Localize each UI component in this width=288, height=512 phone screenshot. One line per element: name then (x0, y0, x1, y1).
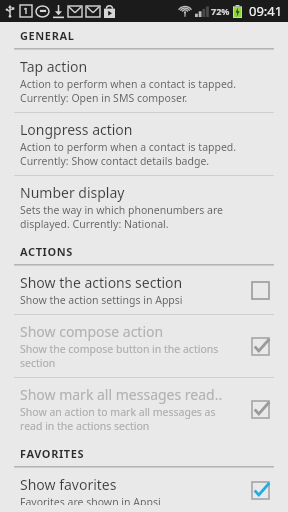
staticText: displayed. Currently: National. (20, 217, 169, 231)
staticText: Action to perform when a contact is tapp… (20, 140, 237, 154)
staticText: section (20, 356, 56, 370)
staticText: 72% (211, 5, 230, 17)
staticText: Currently: Show contact details badge. (20, 154, 210, 168)
staticText: Favorites are shown in Appsi (20, 495, 161, 505)
button[interactable]: Number display (0, 176, 288, 238)
staticText: GENERAL (20, 28, 75, 43)
staticText: Sets the way in which phonenumbers are (20, 203, 223, 217)
button[interactable]: Toggle setting (244, 475, 276, 505)
staticText: Currently: Open in SMS composer. (20, 91, 188, 105)
button[interactable]: Tap action (0, 50, 288, 112)
staticText: ACTIONS (20, 244, 73, 259)
staticText: Show mark all messages read.. (20, 385, 223, 404)
button[interactable]: Show favorites (0, 468, 288, 512)
button[interactable]: Show mark all messages read.. (0, 378, 288, 440)
button[interactable]: Show compose action (0, 315, 288, 377)
button[interactable]: Longpress action (0, 113, 288, 175)
button[interactable]: Toggle setting (244, 330, 276, 362)
staticText: Show the actions section (20, 273, 183, 292)
button[interactable]: Toggle setting (244, 393, 276, 425)
staticText: FAVORITES (20, 446, 85, 461)
staticText: Tap action (20, 57, 88, 76)
staticText: read in the actions section (20, 419, 150, 433)
staticText: 09:41 (249, 2, 283, 20)
button[interactable]: Show the actions section (0, 266, 288, 314)
staticText: Show the action settings in Appsi (20, 293, 183, 307)
staticText: Action to perform when a contact is tapp… (20, 77, 237, 91)
staticText: Number display (20, 183, 125, 202)
staticText: Show the compose button in the actions (20, 342, 219, 356)
staticText: Longpress action (20, 120, 133, 139)
staticText: Show an action to mark all messages as (20, 405, 216, 419)
button[interactable]: Toggle setting (244, 274, 276, 306)
staticText: Show compose action (20, 322, 164, 341)
staticText: Show favorites (20, 475, 117, 494)
